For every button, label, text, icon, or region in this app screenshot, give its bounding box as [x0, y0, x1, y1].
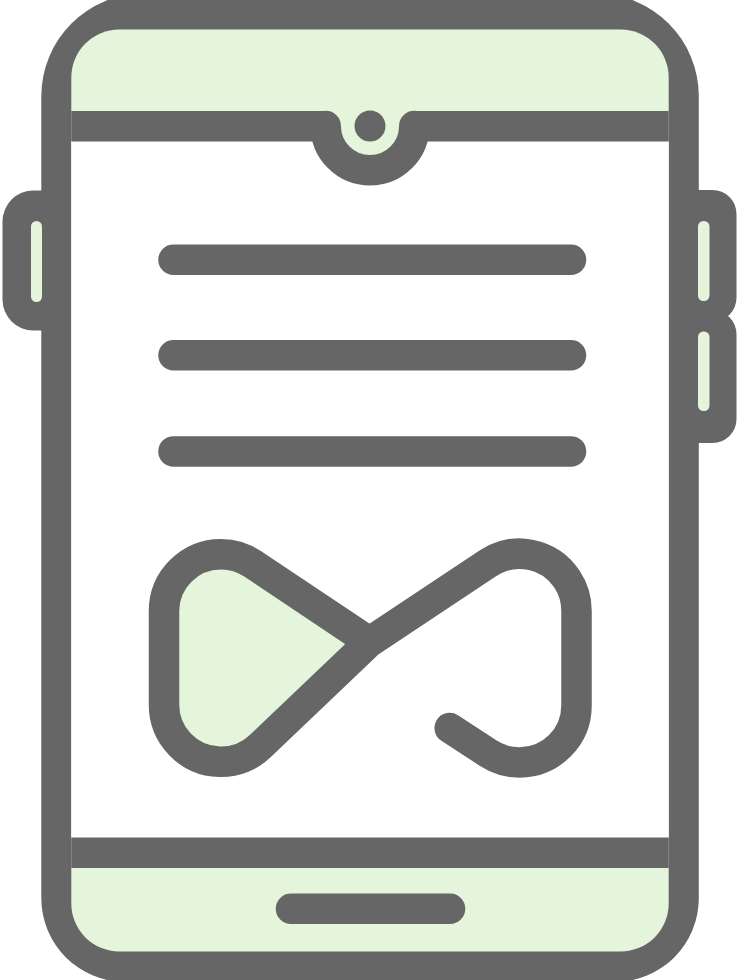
button[interactable]: Mobile video loop icon — [0, 0, 740, 980]
